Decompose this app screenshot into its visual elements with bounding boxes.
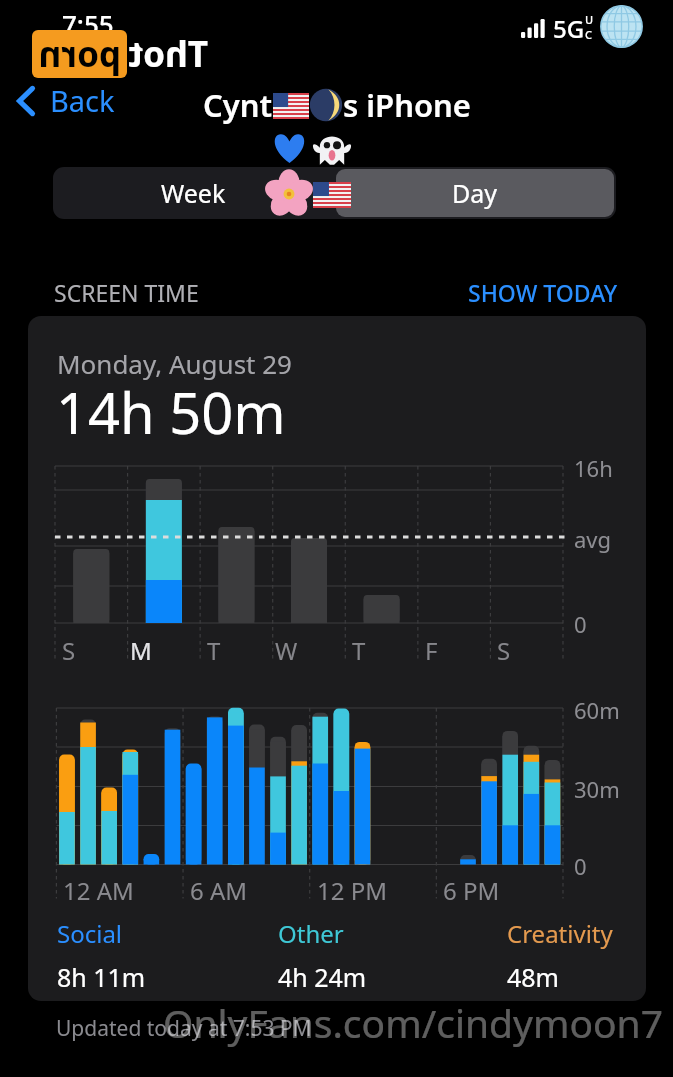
staticText: Cynt <box>203 84 273 126</box>
staticText: 12 AM <box>63 874 134 907</box>
staticText: 4h 24m <box>278 960 367 994</box>
staticText: 14h 50m <box>56 374 286 450</box>
staticText: Other <box>278 917 344 950</box>
staticText: Social <box>57 917 123 950</box>
staticText: T <box>352 634 366 667</box>
button[interactable]: Week <box>53 167 334 219</box>
staticText: F <box>425 634 438 667</box>
staticText: C <box>585 27 592 42</box>
staticText: W <box>275 634 298 667</box>
staticText: T <box>207 634 221 667</box>
staticText: 16h <box>574 453 613 483</box>
staticText: S <box>497 634 511 667</box>
staticText: 48m <box>507 960 559 994</box>
staticText: OnlyFans.com/cindymoon7 <box>163 996 663 1049</box>
staticText: Monday, August 29 <box>57 346 292 381</box>
button[interactable]: Day <box>336 169 614 217</box>
staticText: 0 <box>574 609 587 639</box>
staticText: SCREEN TIME <box>54 277 199 308</box>
staticText: U <box>585 12 594 27</box>
staticText: Back <box>50 81 115 120</box>
button[interactable]: Back <box>6 78 125 123</box>
other: Globe <box>599 4 644 49</box>
button[interactable]: SHOW TODAY <box>468 277 618 308</box>
staticText: M <box>130 634 152 667</box>
staticText: 5G <box>553 12 585 45</box>
staticText: s iPhone <box>343 84 471 126</box>
staticText: S <box>62 634 76 667</box>
staticText: 6 AM <box>190 874 248 907</box>
staticText: 30m <box>574 774 620 804</box>
staticText: 7:55 <box>62 6 114 41</box>
staticText: Thot <box>127 30 208 78</box>
staticText: Updated today at 7:53 PM <box>56 1014 312 1043</box>
other: Cellular signal strength <box>521 19 547 38</box>
staticText: 60m <box>574 695 620 725</box>
staticText: 6 PM <box>443 874 500 907</box>
staticText: 12 PM <box>317 874 387 907</box>
staticText: avg <box>574 524 612 554</box>
staticText: SHOW TODAY <box>468 277 618 308</box>
staticText: Creativity <box>507 917 613 950</box>
staticText: 0 <box>574 851 587 881</box>
staticText: Day <box>452 176 498 210</box>
staticText: porn <box>38 30 121 78</box>
staticText: Week <box>161 176 226 210</box>
staticText: 8h 11m <box>57 960 146 994</box>
